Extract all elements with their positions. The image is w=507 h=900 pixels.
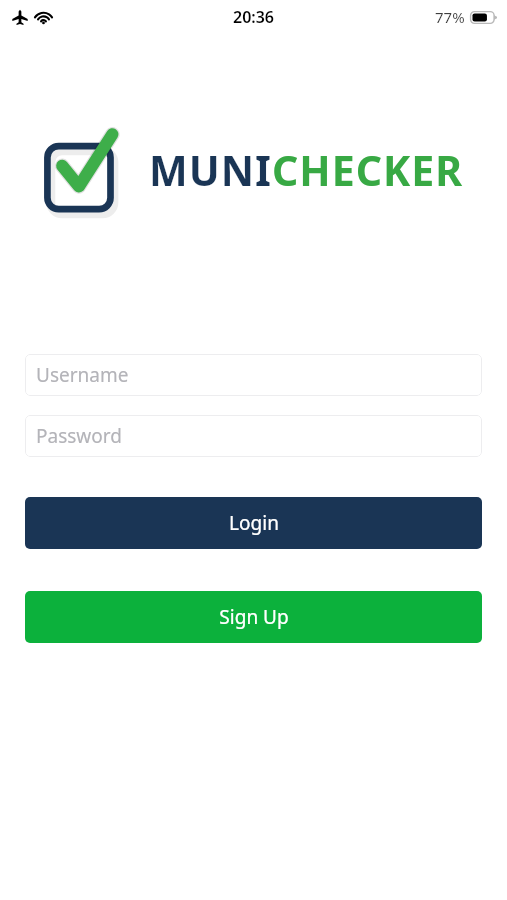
button[interactable]: Username — [25, 354, 482, 396]
staticText: Login — [229, 510, 279, 536]
staticText: Sign Up — [219, 604, 289, 630]
staticText: Username — [36, 362, 129, 388]
button[interactable]: Sign Up — [25, 591, 482, 643]
staticText: Password — [36, 423, 122, 449]
staticText: MUNI — [149, 142, 272, 198]
button[interactable]: Password — [25, 415, 482, 457]
staticText: 20:36 — [233, 6, 275, 28]
staticText: CHECKER — [272, 142, 464, 198]
button[interactable]: Login — [25, 497, 482, 549]
staticText: 77% — [435, 7, 465, 27]
